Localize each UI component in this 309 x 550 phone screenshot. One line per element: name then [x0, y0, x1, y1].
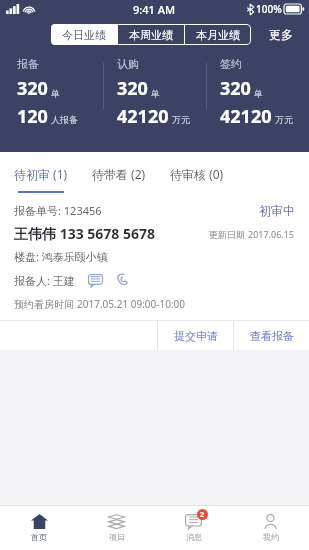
staticText: 查看报备	[250, 329, 294, 343]
staticText: 认购	[117, 57, 139, 71]
button[interactable]: 2	[155, 506, 232, 550]
staticText: 更多	[269, 27, 293, 42]
staticText: 消息	[186, 532, 202, 542]
staticText: 本月业绩	[196, 28, 240, 42]
staticText: 我约	[263, 532, 279, 542]
button[interactable]: 我约	[232, 506, 309, 550]
button[interactable]: 提交申请	[158, 321, 233, 350]
staticText: 万元	[275, 114, 293, 125]
staticText: 今日业绩	[62, 28, 106, 42]
staticText: 项目	[109, 532, 125, 542]
button[interactable]: Send message	[85, 270, 105, 290]
staticText: 42120	[117, 104, 169, 127]
staticText: 报备	[17, 57, 39, 71]
staticText: 单	[51, 88, 60, 99]
staticText: 320	[17, 76, 48, 101]
staticText: 待初审 (1)	[14, 166, 68, 182]
staticText: 42120	[220, 104, 272, 127]
staticText: 待审核 (0)	[170, 166, 224, 182]
staticText: 320	[117, 76, 148, 101]
button[interactable]: 今日业绩	[51, 24, 117, 45]
staticText: 单	[151, 88, 160, 99]
staticText: 9:41 AM	[133, 2, 176, 17]
button[interactable]: 首页	[0, 506, 78, 550]
staticText: 2	[200, 510, 205, 520]
staticText: 楼盘: 鸿泰乐颐小镇	[14, 249, 108, 264]
button[interactable]: 更多	[265, 24, 297, 45]
staticText: 人报备	[51, 114, 78, 125]
staticText: 320	[220, 76, 251, 101]
button[interactable]: 项目	[78, 506, 155, 550]
staticText: 报备人: 王建	[14, 273, 75, 288]
staticText: 本周业绩	[129, 28, 173, 42]
staticText: 2017.05.21 09:00-10:00	[77, 297, 186, 311]
staticText: 报备单号: 123456	[14, 203, 102, 218]
staticText: 签约	[220, 57, 242, 71]
staticText: 2017.06.15	[248, 228, 295, 240]
staticText: 待带看 (2)	[92, 166, 146, 182]
staticText: 王伟伟 133 5678 5678	[14, 224, 156, 243]
staticText: 预约看房时间	[14, 297, 77, 311]
staticText: 初审中	[259, 203, 295, 218]
staticText: 更新日期	[209, 228, 248, 240]
staticText: 万元	[172, 114, 190, 125]
staticText: 提交申请	[174, 329, 218, 343]
staticText: 首页	[31, 532, 47, 542]
button[interactable]: 查看报备	[234, 321, 309, 350]
button[interactable]: 待审核 (0)	[150, 152, 228, 196]
button[interactable]: 本周业绩	[118, 24, 184, 45]
button[interactable]: Call	[111, 270, 131, 290]
staticText: 120	[17, 104, 48, 127]
button[interactable]: 本月业绩	[185, 24, 251, 45]
staticText: 单	[254, 88, 263, 99]
button[interactable]: 待带看 (2)	[72, 152, 150, 196]
button[interactable]: 待初审 (1)	[0, 152, 72, 196]
staticText: 100%	[256, 2, 282, 16]
